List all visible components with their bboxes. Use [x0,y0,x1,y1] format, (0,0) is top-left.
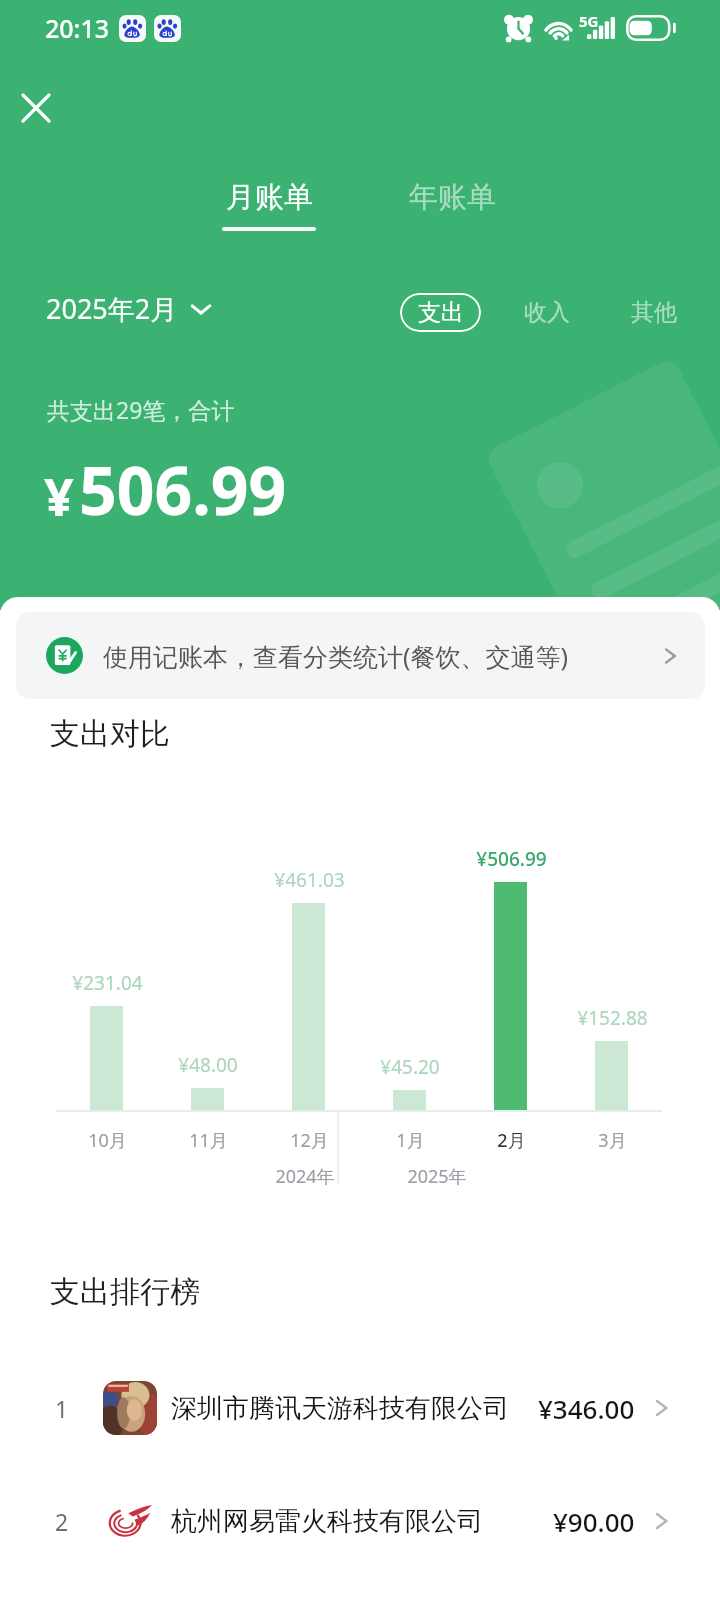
staticText: 支出对比 [50,715,170,753]
staticText: ¥45.20 [380,1054,440,1080]
button[interactable]: 2 [0,1468,720,1574]
staticText: ¥461.03 [274,867,345,893]
button[interactable]: 收入 [520,294,574,331]
button[interactable]: 其他 [627,294,681,331]
staticText: 年账单 [409,179,496,216]
staticText: 杭州网易雷火科技有限公司 [171,1505,483,1538]
staticText: ¥90.00 [553,1504,635,1539]
staticText: 月账单 [226,179,313,216]
staticText: ¥48.00 [178,1052,238,1078]
button[interactable]: 使用记账本，查看分类统计(餐饮、交通等) [16,612,705,699]
staticText: 2025年2月 [46,290,178,327]
staticText: 12月 [290,1128,329,1153]
button[interactable]: Close [8,80,64,136]
staticText: 共支出29笔，合计 [47,394,235,425]
staticText: ¥152.88 [577,1005,648,1031]
staticText: 使用记账本，查看分类统计(餐饮、交通等) [103,639,569,673]
staticText: ¥231.04 [72,970,143,996]
staticText: 5G [579,11,599,31]
staticText: 收入 [524,298,570,327]
button[interactable]: 1 [0,1355,720,1461]
staticText: 2月 [497,1128,526,1153]
staticText: 1 [55,1393,69,1424]
staticText: 3月 [598,1128,627,1153]
staticText: 2 [55,1506,69,1537]
staticText: 支出 [418,298,464,327]
staticText: 10月 [88,1128,127,1153]
button[interactable]: 2025年2月 [46,290,212,327]
staticText: ¥346.00 [538,1391,635,1426]
staticText: 20:13 [45,11,110,45]
staticText: 11月 [189,1128,228,1153]
staticText: 2024年 [275,1164,335,1189]
staticText: 深圳市腾讯天游科技有限公司 [171,1392,509,1425]
staticText: 其他 [631,298,677,327]
staticText: 506.99 [79,444,287,534]
button[interactable]: 月账单 [222,179,316,231]
staticText: 2025年 [407,1164,467,1189]
button[interactable]: 年账单 [409,179,496,216]
staticText: ¥ [44,460,74,531]
staticText: 1月 [396,1128,425,1153]
staticText: 支出排行榜 [50,1273,200,1311]
button[interactable]: 支出 [400,293,481,332]
staticText: ¥506.99 [476,846,547,872]
